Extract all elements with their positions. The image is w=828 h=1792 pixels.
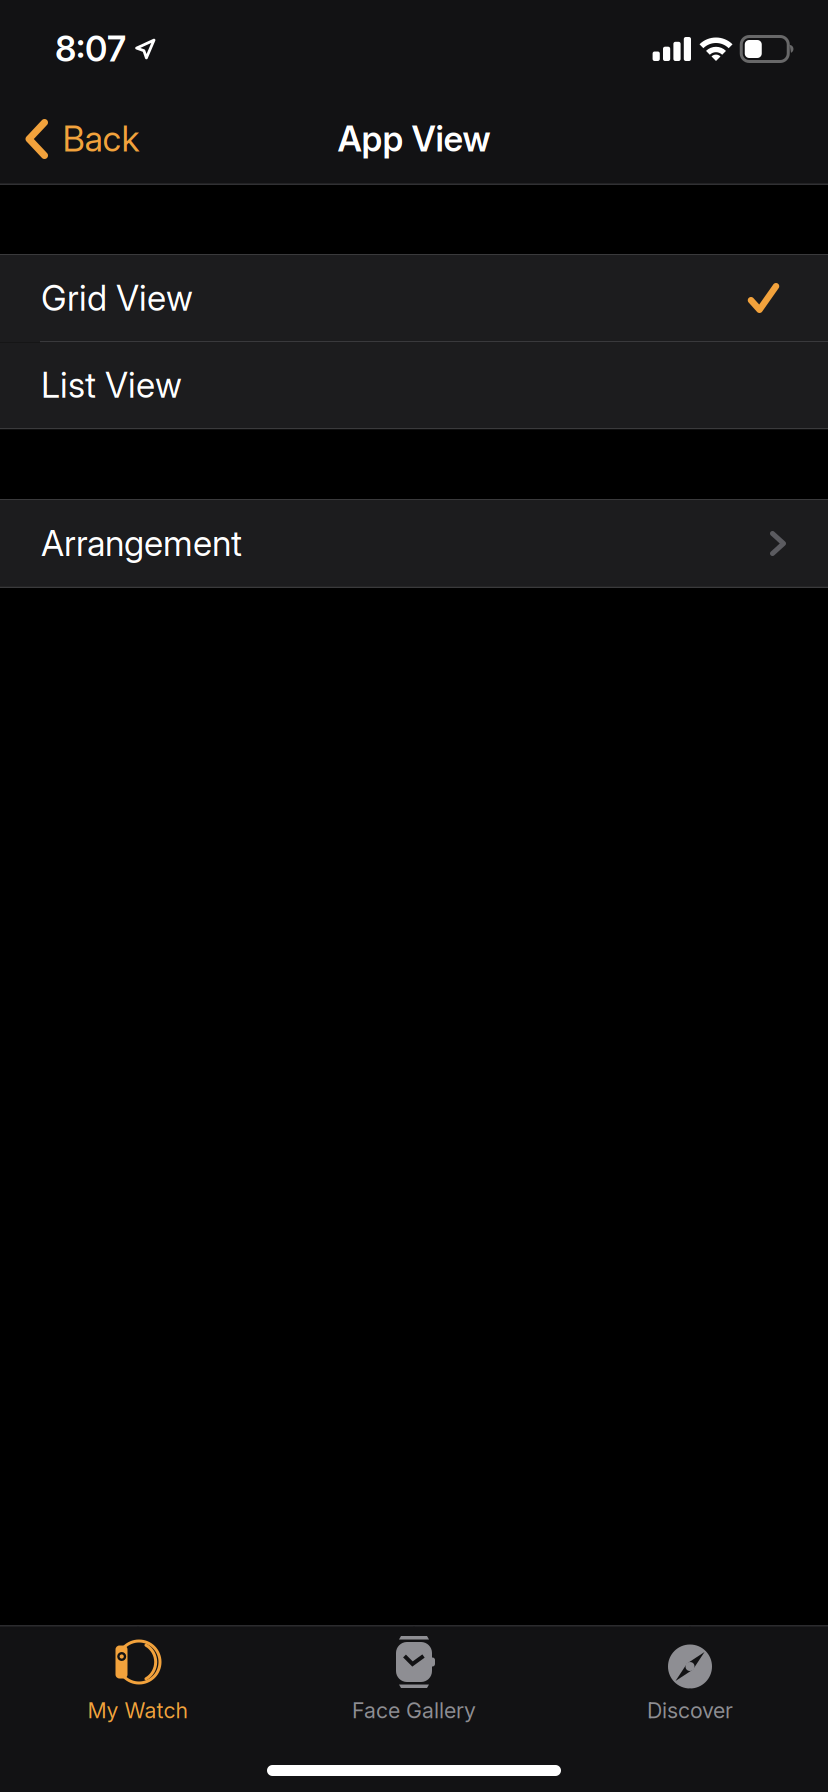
button[interactable]: List View <box>0 342 828 428</box>
staticText: List View <box>41 364 182 406</box>
staticText: App View <box>337 118 490 160</box>
staticText: My Watch <box>87 1697 188 1723</box>
staticText: Arrangement <box>41 522 242 564</box>
button[interactable]: Grid View <box>0 255 828 341</box>
button[interactable]: Face Gallery <box>276 1626 552 1732</box>
button[interactable]: Back <box>0 93 159 185</box>
staticText: Face Gallery <box>352 1697 476 1723</box>
button[interactable]: My Watch <box>0 1626 276 1732</box>
staticText: 8:07 <box>55 28 126 70</box>
staticText: Back <box>62 118 139 160</box>
staticText: Grid View <box>41 277 193 319</box>
staticText: Discover <box>647 1697 733 1723</box>
button[interactable]: Discover <box>552 1626 828 1732</box>
button[interactable]: Arrangement <box>0 500 828 586</box>
